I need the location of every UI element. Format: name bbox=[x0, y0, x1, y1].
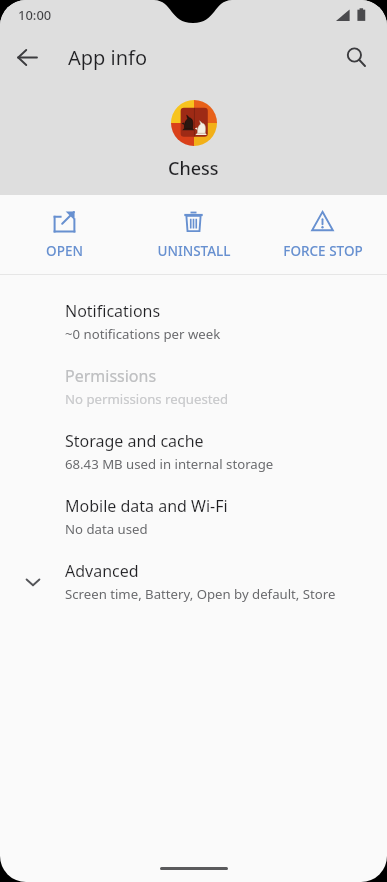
button[interactable]: Permissions bbox=[0, 354, 387, 419]
button[interactable]: Mobile data and Wi-Fi bbox=[0, 484, 387, 549]
staticText: Advanced bbox=[65, 560, 139, 582]
staticText: 10:00 bbox=[18, 6, 52, 24]
staticText: No data used bbox=[65, 520, 148, 538]
staticText: No permissions requested bbox=[65, 390, 229, 408]
staticText: Chess bbox=[168, 156, 219, 181]
staticText: ~0 notifications per week bbox=[65, 325, 221, 343]
staticText: UNINSTALL bbox=[157, 242, 231, 260]
staticText: Mobile data and Wi-Fi bbox=[65, 495, 228, 517]
button[interactable]: Back bbox=[6, 36, 48, 78]
button[interactable]: Notifications bbox=[0, 289, 387, 354]
staticText: FORCE STOP bbox=[283, 242, 363, 260]
button[interactable]: Search bbox=[335, 36, 377, 78]
staticText: Storage and cache bbox=[65, 430, 204, 452]
button[interactable]: UNINSTALL bbox=[129, 204, 258, 266]
button[interactable]: Storage and cache bbox=[0, 419, 387, 484]
button[interactable]: Advanced bbox=[0, 549, 387, 614]
button[interactable]: OPEN bbox=[0, 204, 129, 266]
staticText: Screen time, Battery, Open by default, S… bbox=[65, 585, 336, 603]
staticText: Notifications bbox=[65, 300, 161, 322]
staticText: Permissions bbox=[65, 365, 157, 387]
staticText: 68.43 MB used in internal storage bbox=[65, 455, 274, 473]
button[interactable]: FORCE STOP bbox=[258, 204, 387, 266]
staticText: App info bbox=[68, 44, 148, 71]
staticText: OPEN bbox=[46, 242, 83, 260]
